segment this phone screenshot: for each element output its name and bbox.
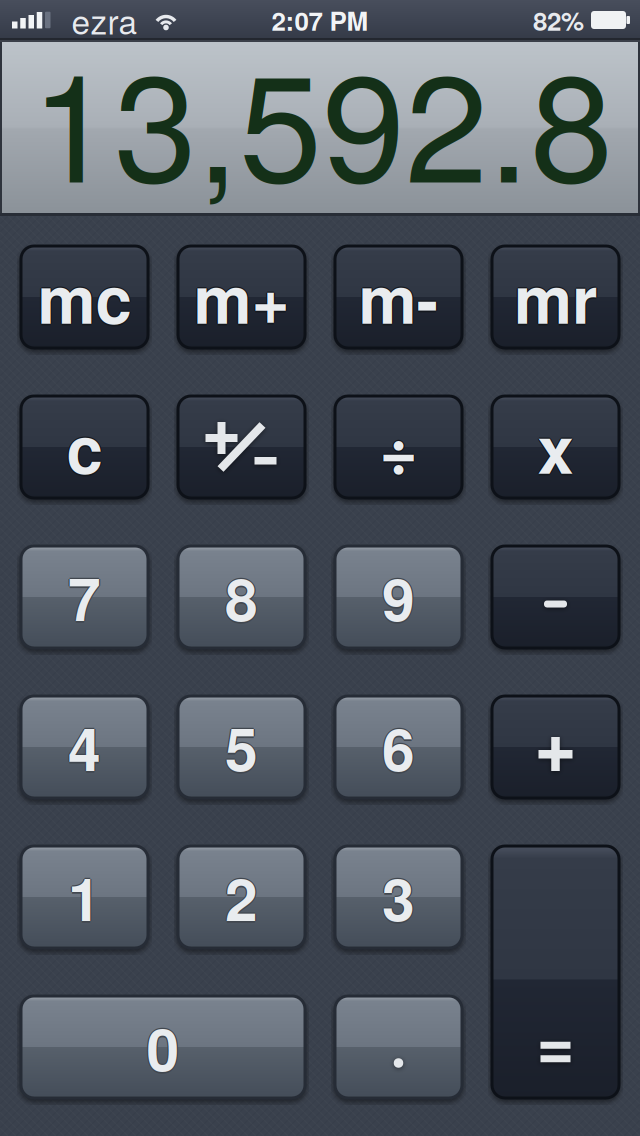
staticText: 0 — [146, 1004, 179, 1088]
staticText: 1 — [68, 854, 101, 938]
staticText: 7 — [68, 557, 101, 641]
staticText: 5 — [225, 707, 258, 791]
staticText: 3 — [382, 855, 415, 939]
staticText: 6 — [382, 704, 415, 788]
staticText: mc — [37, 250, 131, 344]
button[interactable]: m+ — [178, 246, 305, 348]
button[interactable]: 5 — [178, 696, 305, 798]
button[interactable]: c — [21, 396, 148, 498]
button[interactable]: ÷ — [335, 396, 462, 498]
staticText: 2 — [225, 857, 258, 941]
staticText: x — [537, 402, 573, 496]
staticText: 2 — [225, 855, 258, 939]
staticText: 2 — [225, 854, 258, 938]
staticText: m- — [360, 250, 440, 344]
staticText: 0 — [145, 1005, 178, 1089]
staticText: m- — [357, 250, 437, 344]
staticText: x — [539, 400, 575, 494]
staticText: 8 — [224, 555, 257, 639]
button[interactable]: 3 — [335, 846, 462, 948]
button[interactable]: +/- — [178, 396, 305, 498]
button[interactable]: 0 — [21, 996, 305, 1098]
staticText: mr — [513, 250, 596, 344]
button[interactable]: 6 — [335, 696, 462, 798]
staticText: 5 — [225, 704, 258, 788]
staticText: ezra — [71, 0, 137, 44]
button[interactable]: mc — [21, 246, 148, 348]
staticText: mc — [39, 250, 133, 344]
staticText: 3 — [381, 855, 414, 939]
staticText: mr — [514, 249, 597, 343]
staticText: m- — [358, 249, 438, 343]
staticText: c — [68, 400, 104, 494]
staticText: x — [536, 400, 572, 494]
staticText: ÷ — [378, 400, 416, 494]
staticText: 5 — [224, 705, 257, 789]
staticText: m+ — [192, 250, 288, 344]
staticText: x — [537, 400, 573, 494]
staticText: 1 — [69, 855, 102, 939]
staticText: 7 — [67, 555, 100, 639]
staticText: mr — [515, 250, 598, 344]
staticText: 2 — [224, 855, 257, 939]
staticText: 8 — [225, 554, 258, 638]
staticText: m+ — [195, 250, 291, 344]
staticText: 4 — [67, 705, 100, 789]
staticText: 82% — [533, 1, 584, 39]
staticText: 5 — [226, 705, 259, 789]
staticText: m+ — [193, 252, 289, 346]
staticText: m- — [358, 252, 438, 346]
staticText: 9 — [382, 557, 415, 641]
staticText: 9 — [383, 555, 416, 639]
button[interactable]: - — [492, 546, 619, 648]
button[interactable]: 2 — [178, 846, 305, 948]
staticText: c — [66, 400, 102, 494]
staticText: 8 — [225, 555, 258, 639]
staticText: 1 — [67, 855, 100, 939]
staticText: 3 — [383, 855, 416, 939]
staticText: mr — [514, 250, 597, 344]
staticText: c — [66, 399, 102, 493]
staticText: ÷ — [379, 399, 417, 493]
staticText: 2:07 PM — [271, 1, 368, 39]
button[interactable]: 4 — [21, 696, 148, 798]
staticText: 7 — [68, 555, 101, 639]
staticText: 7 — [68, 554, 101, 638]
staticText: c — [66, 402, 102, 496]
staticText: 6 — [381, 705, 414, 789]
button[interactable]: 8 — [178, 546, 305, 648]
button[interactable]: + — [492, 696, 619, 798]
staticText: c — [65, 400, 101, 494]
button[interactable]: . — [335, 996, 462, 1098]
staticText: m- — [358, 250, 438, 344]
button[interactable]: x — [492, 396, 619, 498]
staticText: 4 — [68, 704, 101, 788]
staticText: mc — [36, 250, 130, 344]
staticText: 13,592.8 — [31, 11, 613, 225]
button[interactable]: = — [492, 846, 619, 1098]
staticText: 6 — [382, 707, 415, 791]
staticText: 0 — [148, 1005, 181, 1089]
staticText: ÷ — [379, 402, 417, 496]
staticText: 8 — [226, 555, 259, 639]
staticText: 9 — [382, 555, 415, 639]
button[interactable]: m- — [335, 246, 462, 348]
button[interactable]: 1 — [21, 846, 148, 948]
staticText: 8 — [225, 557, 258, 641]
staticText: ÷ — [381, 400, 419, 494]
staticText: m+ — [193, 249, 289, 343]
staticText: 7 — [69, 555, 102, 639]
staticText: 6 — [382, 705, 415, 789]
staticText: mc — [37, 249, 131, 343]
staticText: 2 — [226, 855, 259, 939]
staticText: 4 — [69, 705, 102, 789]
staticText: 4 — [68, 707, 101, 791]
button[interactable]: 7 — [21, 546, 148, 648]
staticText: 5 — [225, 705, 258, 789]
button[interactable]: 9 — [335, 546, 462, 648]
staticText: 4 — [68, 705, 101, 789]
staticText: 3 — [382, 857, 415, 941]
button[interactable]: mr — [492, 246, 619, 348]
staticText: m+ — [193, 250, 289, 344]
staticText: mr — [514, 252, 597, 346]
